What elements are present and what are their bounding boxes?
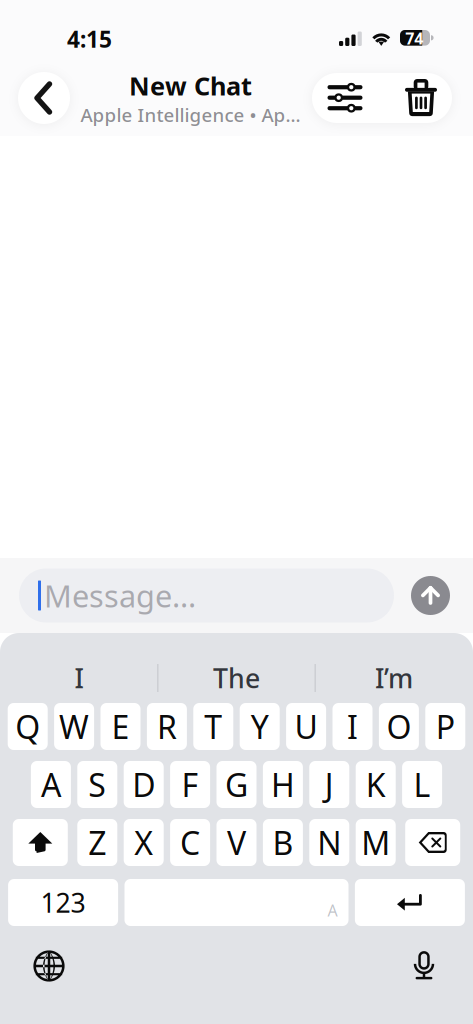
staticText: N: [317, 821, 341, 864]
button[interactable]: L: [402, 761, 442, 808]
button[interactable]: H: [263, 761, 303, 808]
staticText: 123: [41, 885, 86, 920]
staticText: Apple Intelligence • Ap...: [80, 102, 300, 127]
staticText: The: [213, 660, 260, 696]
button[interactable]: B: [263, 819, 303, 866]
button[interactable]: Space: [124, 879, 348, 926]
button[interactable]: Delete: [405, 819, 460, 866]
button[interactable]: W: [54, 703, 94, 750]
button[interactable]: Chat options: [317, 73, 373, 123]
staticText: T: [204, 705, 222, 748]
button[interactable]: Switch keyboard: [25, 942, 73, 990]
button[interactable]: 123: [8, 879, 118, 926]
button[interactable]: G: [216, 761, 256, 808]
staticText: A: [41, 763, 61, 806]
staticText: F: [182, 763, 199, 806]
button[interactable]: I: [1, 653, 157, 703]
button[interactable]: Shift: [13, 819, 68, 866]
staticText: L: [414, 763, 431, 806]
staticText: U: [295, 705, 318, 748]
button[interactable]: T: [193, 703, 233, 750]
button[interactable]: Dictate: [400, 942, 448, 990]
staticText: J: [325, 763, 334, 806]
staticText: O: [386, 705, 411, 748]
button[interactable]: X: [124, 819, 164, 866]
staticText: Q: [15, 705, 40, 748]
button[interactable]: S: [77, 761, 117, 808]
staticText: R: [157, 705, 177, 748]
staticText: Z: [88, 821, 106, 864]
staticText: 4:15: [67, 24, 112, 54]
button[interactable]: I’m: [316, 653, 472, 703]
button[interactable]: U: [286, 703, 326, 750]
staticText: H: [271, 763, 295, 806]
button[interactable]: A: [31, 761, 71, 808]
staticText: S: [88, 763, 106, 806]
button[interactable]: Z: [77, 819, 117, 866]
button[interactable]: K: [356, 761, 396, 808]
staticText: 74: [405, 28, 423, 49]
button[interactable]: Return: [355, 879, 465, 926]
button[interactable]: Q: [8, 703, 48, 750]
button[interactable]: The: [158, 653, 314, 703]
button[interactable]: O: [379, 703, 419, 750]
button[interactable]: I: [332, 703, 372, 750]
staticText: X: [134, 821, 153, 864]
button[interactable]: Send: [411, 576, 450, 615]
staticText: P: [436, 705, 455, 748]
button[interactable]: R: [147, 703, 187, 750]
staticText: M: [361, 821, 390, 864]
staticText: D: [132, 763, 155, 806]
button[interactable]: E: [100, 703, 140, 750]
button[interactable]: F: [170, 761, 210, 808]
staticText: W: [59, 705, 89, 748]
button[interactable]: Delete chat: [393, 73, 449, 123]
button[interactable]: V: [216, 819, 256, 866]
button[interactable]: Back: [18, 72, 70, 124]
button[interactable]: D: [124, 761, 164, 808]
button[interactable]: Y: [240, 703, 280, 750]
staticText: Message...: [44, 575, 196, 616]
staticText: I: [75, 660, 84, 696]
staticText: I: [347, 705, 358, 748]
staticText: A: [327, 900, 337, 921]
staticText: New Chat: [129, 69, 252, 102]
staticText: K: [366, 763, 386, 806]
button[interactable]: M: [356, 819, 396, 866]
staticText: I’m: [375, 660, 413, 696]
button[interactable]: J: [309, 761, 349, 808]
staticText: B: [272, 821, 293, 864]
staticText: E: [111, 705, 129, 748]
button[interactable]: N: [309, 819, 349, 866]
button[interactable]: P: [425, 703, 465, 750]
staticText: G: [225, 763, 248, 806]
staticText: V: [227, 821, 246, 864]
button[interactable]: Message...: [19, 568, 394, 622]
staticText: C: [180, 821, 200, 864]
button[interactable]: C: [170, 819, 210, 866]
staticText: Y: [251, 705, 269, 748]
